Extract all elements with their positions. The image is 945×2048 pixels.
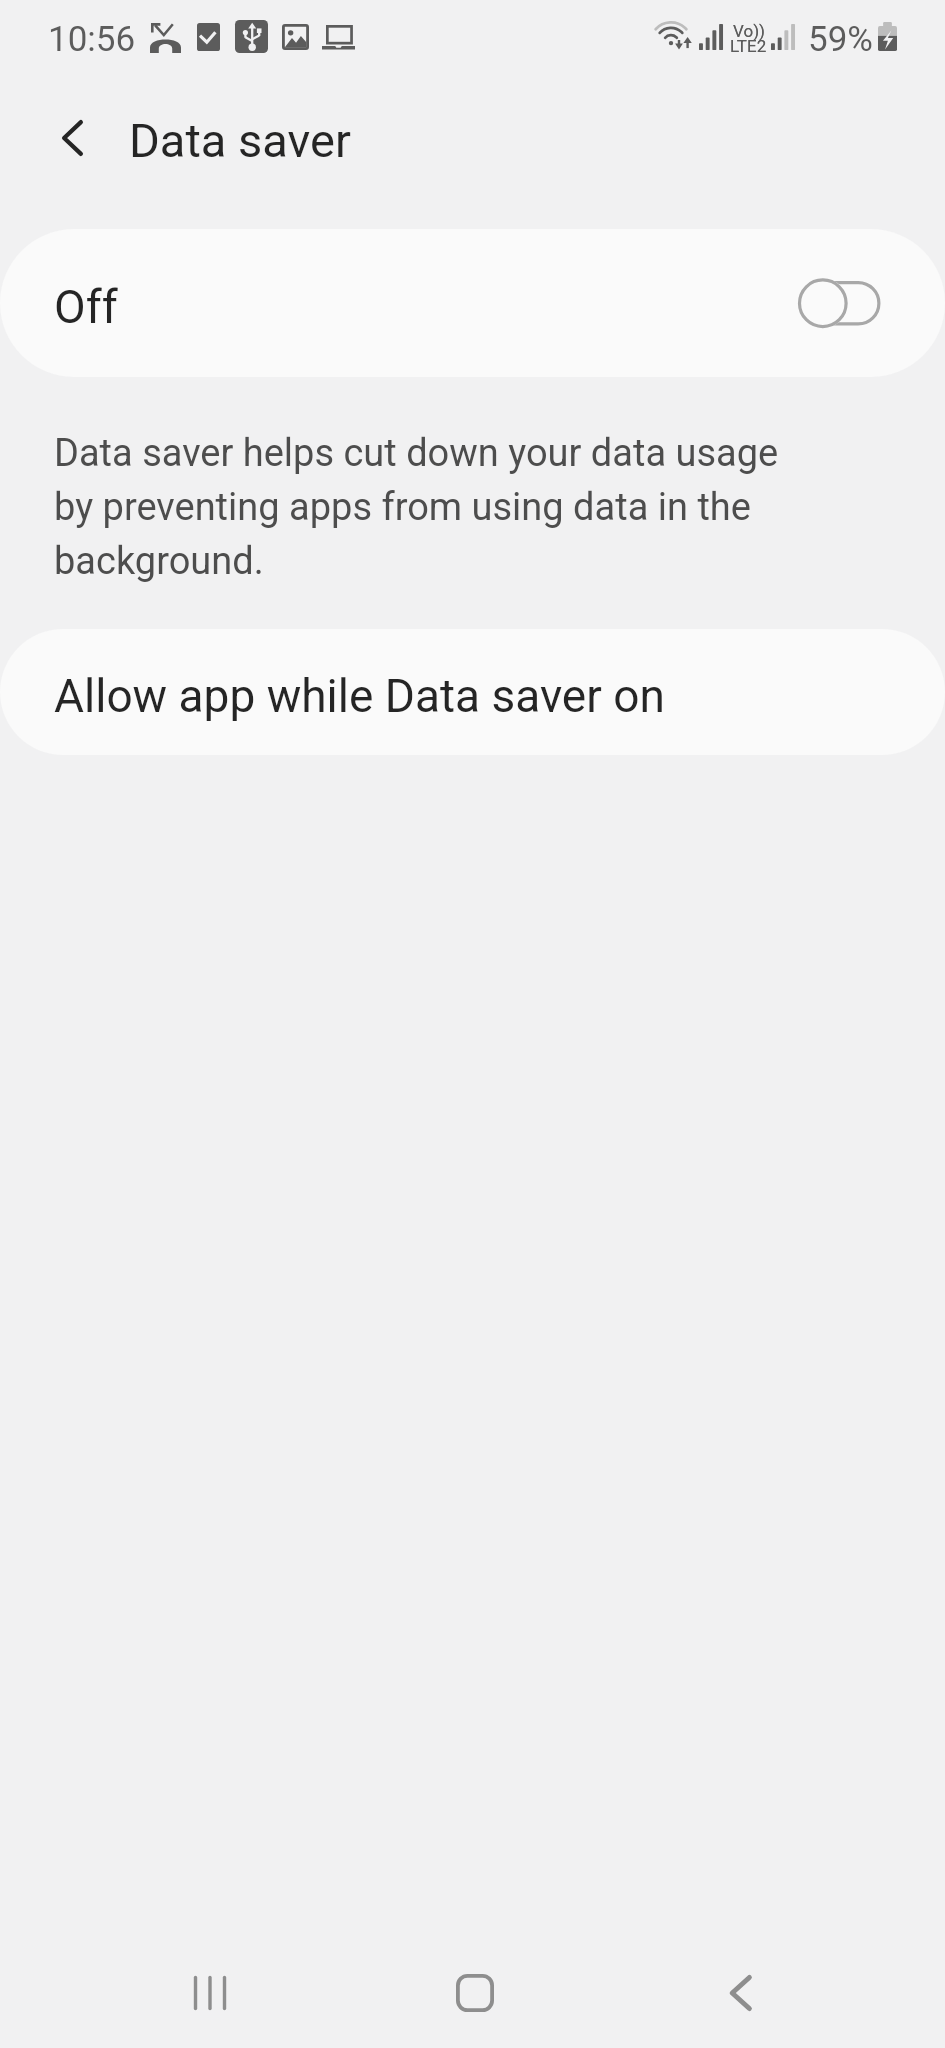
button[interactable]: Home bbox=[423, 1941, 527, 2045]
staticText: Vo)) bbox=[733, 21, 765, 41]
staticText: Vo)) bbox=[733, 21, 765, 41]
staticText: Data saver bbox=[129, 113, 351, 169]
button[interactable]: Allow app while Data saver on bbox=[0, 629, 945, 755]
staticText: LTE2 bbox=[730, 36, 767, 56]
staticText: Data saver helps cut down your data usag… bbox=[54, 423, 799, 585]
staticText: Off bbox=[54, 280, 118, 334]
staticText: Allow app while Data saver on bbox=[54, 669, 665, 723]
button[interactable]: Back bbox=[689, 1941, 793, 2045]
button[interactable]: Off bbox=[0, 229, 945, 377]
staticText: LTE2 bbox=[730, 36, 767, 56]
staticText: 10:56 bbox=[48, 18, 136, 60]
button[interactable]: Navigate up bbox=[32, 98, 112, 178]
staticText: 59% bbox=[808, 18, 873, 60]
button[interactable]: Recent apps bbox=[158, 1941, 262, 2045]
